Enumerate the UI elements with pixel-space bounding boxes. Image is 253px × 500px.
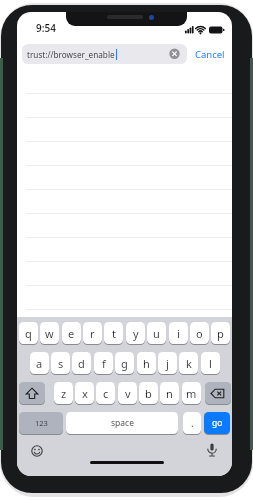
button[interactable]: w [40, 322, 59, 344]
button[interactable] [205, 382, 231, 404]
button[interactable]: p [211, 322, 230, 344]
button[interactable]: space [66, 412, 178, 434]
staticText: i [177, 326, 180, 341]
staticText: r [90, 326, 95, 341]
staticText: j [166, 356, 169, 371]
staticText: h [143, 356, 150, 371]
staticText: c [103, 386, 109, 401]
button[interactable]: x [75, 382, 94, 404]
staticText: 9:54 [36, 21, 56, 35]
staticText: u [153, 326, 160, 341]
button[interactable]: b [139, 382, 158, 404]
button[interactable]: g [115, 352, 134, 374]
button[interactable]: e [62, 322, 81, 344]
staticText: p [217, 326, 224, 341]
button[interactable]: t [104, 322, 123, 344]
button[interactable]: z [54, 382, 73, 404]
button[interactable]: y [126, 322, 145, 344]
button[interactable]: 123 [19, 412, 63, 434]
staticText: b [145, 386, 152, 401]
button[interactable]: v [118, 382, 137, 404]
button[interactable] [19, 382, 45, 404]
staticText: m [186, 386, 197, 401]
button[interactable]: k [179, 352, 198, 374]
staticText: t [112, 326, 116, 341]
staticText: z [61, 386, 67, 401]
staticText: e [68, 326, 75, 341]
staticText: l [209, 356, 212, 371]
button[interactable]: go [204, 412, 230, 434]
staticText: v [125, 386, 131, 401]
staticText: d [78, 356, 85, 371]
button[interactable]: o [190, 322, 209, 344]
button[interactable]: l [201, 352, 220, 374]
button[interactable]: m [182, 382, 201, 404]
button[interactable]: n [160, 382, 179, 404]
button[interactable] [169, 48, 180, 59]
button[interactable]: . [183, 412, 201, 434]
button[interactable]: r [83, 322, 102, 344]
staticText: Cancel [195, 48, 225, 61]
button[interactable]: i [169, 322, 188, 344]
button[interactable]: j [158, 352, 177, 374]
staticText: . [191, 416, 194, 430]
button[interactable]: c [96, 382, 115, 404]
staticText: trust://browser_enable [27, 49, 115, 60]
staticText: q [25, 326, 32, 341]
button[interactable]: u [147, 322, 166, 344]
button[interactable] [31, 445, 43, 457]
staticText: n [166, 386, 173, 401]
staticText: 123 [35, 418, 48, 428]
button[interactable]: a [30, 352, 49, 374]
button[interactable]: f [94, 352, 113, 374]
button[interactable]: h [137, 352, 156, 374]
staticText: space [111, 417, 134, 429]
staticText: s [58, 356, 64, 371]
staticText: k [186, 356, 192, 371]
button[interactable] [206, 443, 218, 458]
staticText: x [82, 386, 88, 401]
button[interactable]: Cancel [189, 44, 231, 64]
staticText: f [102, 356, 106, 371]
staticText: o [196, 326, 203, 341]
button[interactable]: d [72, 352, 91, 374]
button[interactable]: q [19, 322, 38, 344]
staticText: a [36, 356, 43, 371]
staticText: go [212, 417, 223, 429]
button[interactable]: s [51, 352, 70, 374]
staticText: w [45, 326, 54, 341]
staticText: y [133, 326, 139, 341]
button[interactable]: trust://browser_enable [22, 44, 187, 64]
staticText: g [121, 356, 128, 371]
